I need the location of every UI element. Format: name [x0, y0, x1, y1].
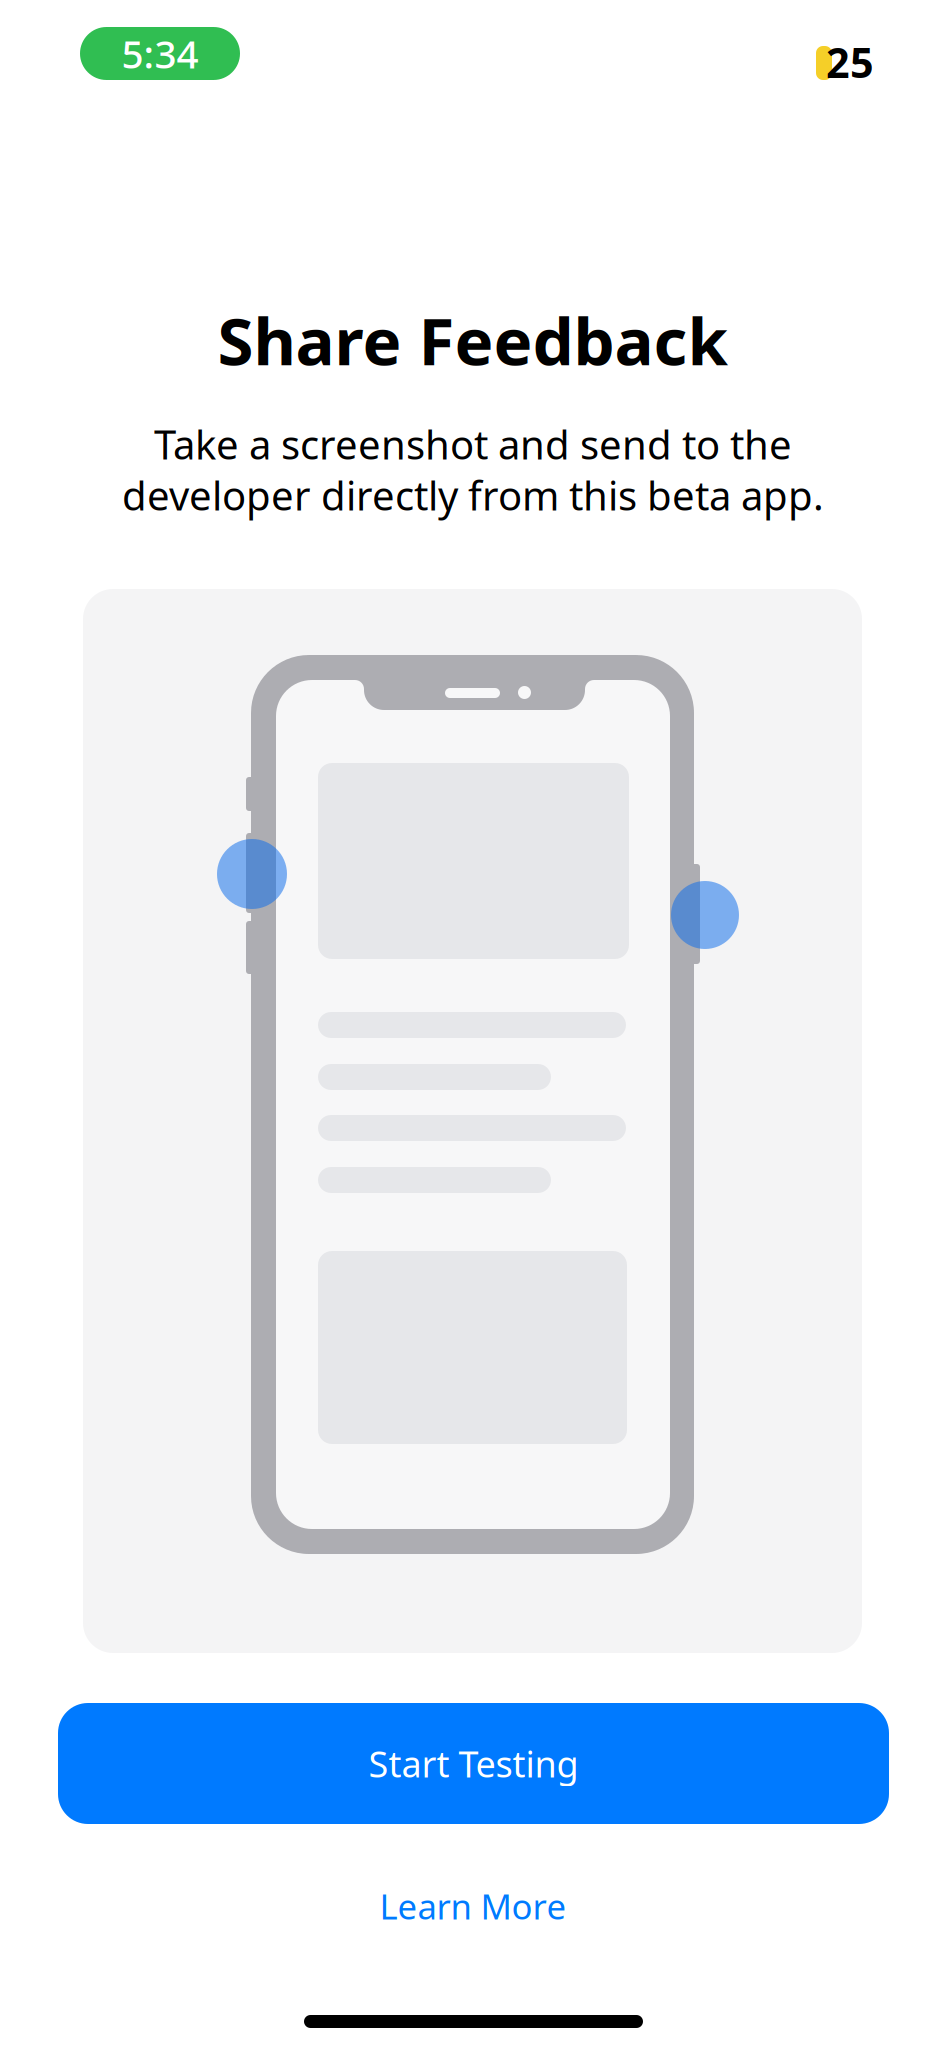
button[interactable]: Learn More	[273, 1870, 673, 1942]
staticText: 5:34	[121, 28, 198, 79]
staticText: Learn More	[379, 1883, 566, 1929]
staticText: 25	[826, 35, 874, 89]
staticText: Start Testing	[368, 1740, 578, 1787]
staticText: developer directly from this beta app.	[122, 468, 824, 521]
button[interactable]: Start Testing	[58, 1703, 889, 1824]
staticText: Take a screenshot and send to the	[154, 417, 792, 470]
staticText: Share Feedback	[217, 297, 728, 383]
